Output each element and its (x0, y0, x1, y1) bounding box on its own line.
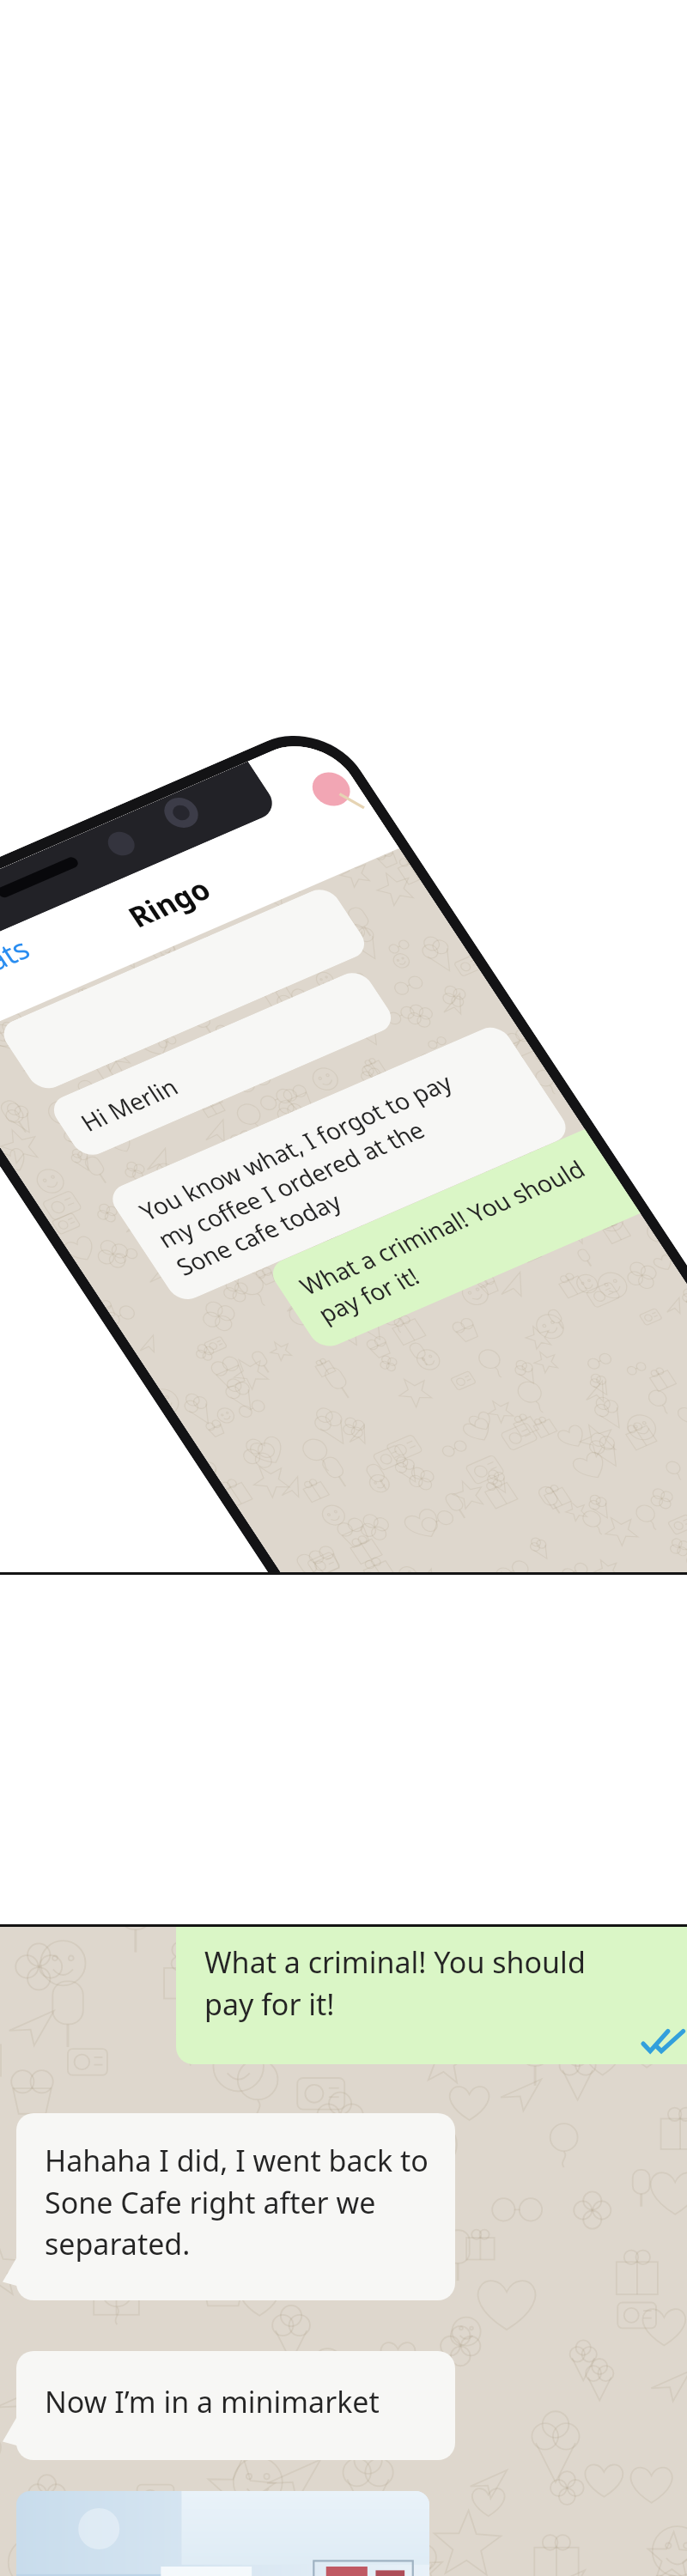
staticText: What a criminal! You should pay for it! (204, 1942, 586, 2024)
other: Message read (643, 2030, 684, 2052)
staticText: Now I’m in a minimarket (45, 2382, 380, 2421)
button[interactable]: What a criminal! You should pay for it! (176, 1927, 687, 2064)
button[interactable] (16, 2491, 429, 2576)
staticText: Hahaha I did, I went back to Sone Cafe r… (45, 2141, 429, 2263)
button[interactable]: Now I’m in a minimarket (16, 2351, 455, 2460)
staticText: Hi Merlin (107, 993, 222, 1030)
button[interactable]: Hahaha I did, I went back to Sone Cafe r… (16, 2113, 455, 2300)
staticText: What a criminal! You should pay for it! (215, 1255, 562, 1327)
staticText: Chats (79, 783, 166, 828)
staticText: Ringo (285, 802, 379, 847)
staticText: You know what, I forgot to pay my coffee… (107, 1109, 489, 1218)
